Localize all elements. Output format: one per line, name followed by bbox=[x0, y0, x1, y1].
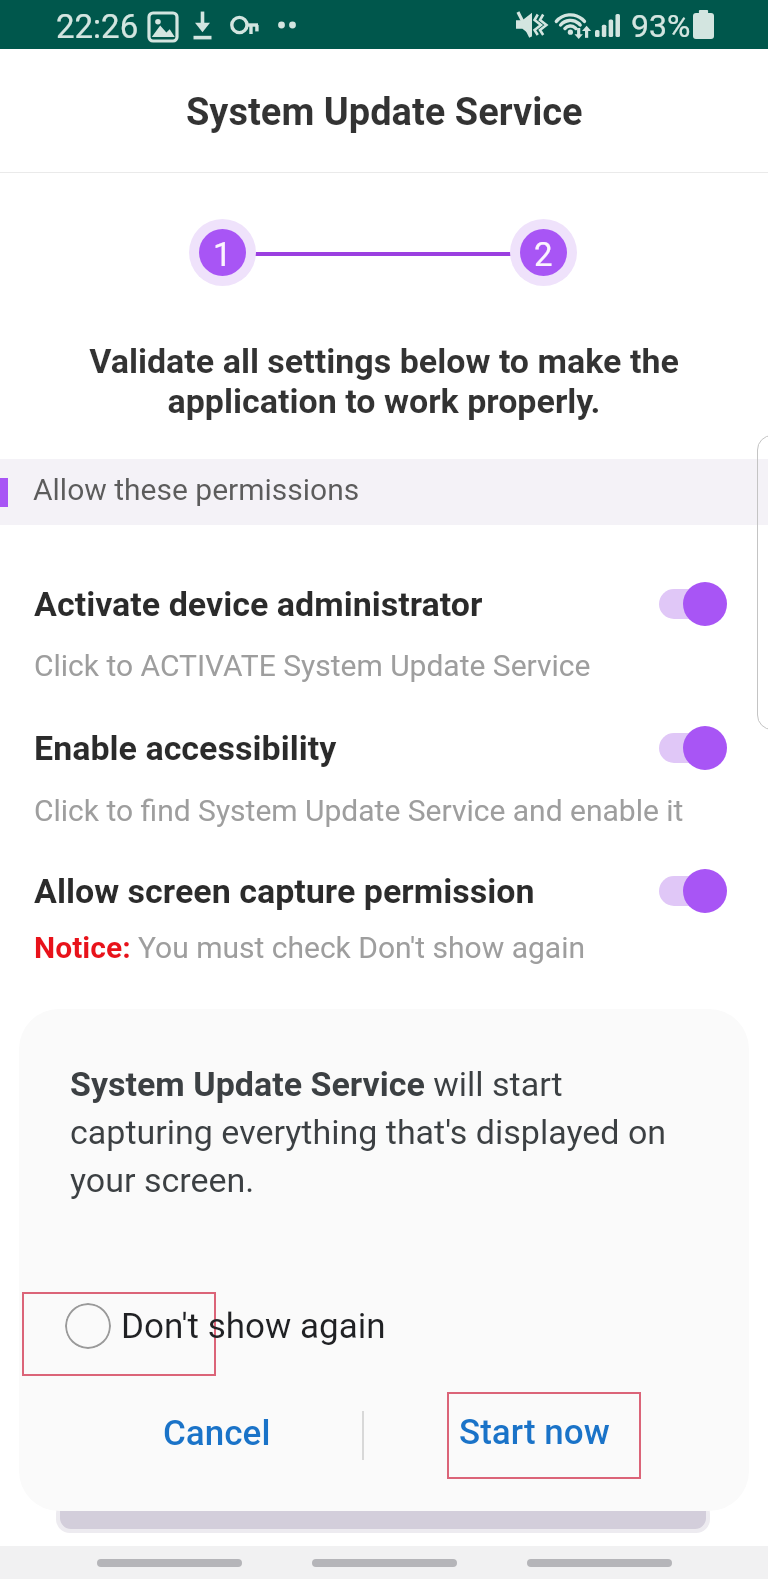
button[interactable]: System Update Service bbox=[0, 49, 768, 172]
staticText: Don't show again bbox=[121, 1306, 386, 1347]
button[interactable]: Cancel bbox=[141, 1394, 293, 1472]
button[interactable]: Allow these permissions bbox=[0, 459, 768, 525]
button[interactable]: Enable accessibility bbox=[0, 725, 768, 783]
button[interactable]: Activate device administrator bbox=[0, 581, 768, 639]
staticText: 2 bbox=[534, 235, 553, 274]
button[interactable]: Start now bbox=[447, 1392, 641, 1479]
staticText: Click to ACTIVATE System Update Service bbox=[34, 648, 591, 683]
staticText: System Update Service will start capturi… bbox=[70, 1064, 695, 1200]
button[interactable]: 2 bbox=[510, 219, 577, 286]
staticText: Allow screen capture permission bbox=[34, 871, 535, 911]
button[interactable]: Recents bbox=[97, 1546, 242, 1579]
button[interactable]: Back bbox=[527, 1546, 672, 1579]
staticText: Allow these permissions bbox=[33, 472, 360, 507]
staticText: 1 bbox=[213, 235, 232, 274]
staticText: Cancel bbox=[163, 1413, 271, 1454]
button[interactable]: 1 bbox=[189, 219, 256, 286]
staticText: System Update Service bbox=[186, 90, 583, 135]
staticText: Activate device administrator bbox=[34, 584, 483, 624]
staticText: Enable accessibility bbox=[34, 728, 337, 768]
staticText: 22:26 bbox=[56, 7, 139, 46]
staticText: Validate all settings below to make the … bbox=[0, 341, 768, 421]
button[interactable]: Allow screen capture permission bbox=[0, 868, 768, 926]
button[interactable] bbox=[22, 1292, 216, 1376]
staticText: 93% bbox=[631, 7, 691, 45]
staticText: Notice: You must check Don't show again bbox=[34, 930, 586, 965]
button[interactable]: Home bbox=[312, 1546, 457, 1579]
staticText: Start now bbox=[459, 1412, 610, 1453]
staticText: Click to find System Update Service and … bbox=[34, 793, 684, 828]
